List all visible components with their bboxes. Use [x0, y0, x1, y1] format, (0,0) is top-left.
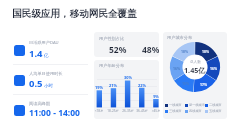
staticText: 1.4: [29, 47, 43, 60]
staticText: 52%: [109, 44, 127, 56]
staticText: >45岁: [149, 109, 163, 113]
staticText: 人均单日使用时长: [29, 71, 63, 76]
staticText: 五线城市: [209, 109, 222, 113]
staticText: - 14:00: [51, 107, 80, 119]
staticText: 亿: [44, 53, 49, 59]
staticText: 新一线城市: [189, 103, 205, 107]
staticText: 19%: [94, 85, 104, 90]
staticText: 11:00: [29, 107, 51, 119]
staticText: 国民级应用，移动网民全覆盖: [12, 8, 137, 20]
staticText: 26-35岁: [121, 109, 135, 113]
staticText: 18%: [180, 49, 189, 54]
staticText: 日活跃用户DAU: [29, 40, 59, 46]
staticText: 四线城市: [189, 109, 202, 113]
staticText: 三线城市: [169, 109, 182, 113]
staticText: 小时: [44, 83, 53, 89]
staticText: 16%: [172, 66, 181, 71]
staticText: 30%: [123, 75, 133, 80]
button[interactable]: 人均单日使用时长: [6, 65, 88, 95]
staticText: 二线城市: [209, 103, 222, 107]
button[interactable]: 日活跃用户DAU: [6, 35, 88, 65]
staticText: <18岁: [92, 109, 106, 113]
staticText: 1.45亿: [184, 65, 206, 75]
staticText: 总人数: [190, 60, 201, 65]
staticText: 15%: [181, 81, 190, 86]
button[interactable]: 阅读高峰期: [6, 95, 88, 125]
staticText: 18%: [201, 49, 210, 54]
staticText: 17%: [199, 82, 208, 87]
staticText: 48%: [142, 44, 159, 56]
staticText: 16%: [209, 66, 218, 71]
staticText: 21%: [108, 83, 118, 88]
staticText: 阅读高峰期: [29, 101, 50, 106]
staticText: 18-25岁: [106, 109, 120, 113]
button[interactable]: 用户城市分布: [163, 32, 227, 119]
staticText: 用户年龄分布: [99, 63, 125, 68]
staticText: 22%: [137, 83, 147, 88]
button[interactable]: 用户年龄分布: [94, 60, 159, 119]
staticText: 一线城市: [169, 103, 182, 107]
staticText: 用户性别占比: [99, 36, 125, 41]
staticText: 用户城市分布: [167, 35, 193, 40]
staticText: 0.5: [29, 77, 43, 90]
button[interactable]: 用户性别占比: [94, 32, 159, 57]
staticText: 36-45岁: [135, 109, 149, 113]
staticText: 9%: [151, 94, 161, 99]
